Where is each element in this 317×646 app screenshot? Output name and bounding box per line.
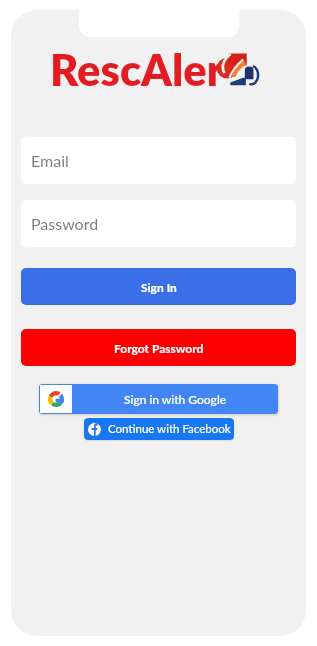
staticText: Password — [31, 214, 99, 233]
button[interactable]: Sign in with Google — [39, 384, 278, 414]
other: RescAlert logo — [218, 52, 259, 86]
staticText: RescAler — [50, 43, 224, 88]
staticText: Forgot Password — [114, 341, 204, 355]
button[interactable]: Password — [21, 200, 296, 247]
button[interactable]: Sign In — [21, 268, 296, 305]
staticText: Email — [31, 151, 69, 170]
staticText: Sign in with Google — [124, 392, 227, 406]
staticText: Sign In — [141, 280, 177, 294]
button[interactable]: Continue with Facebook — [84, 418, 234, 440]
button[interactable]: Email — [21, 137, 296, 184]
button[interactable]: Forgot Password — [21, 329, 296, 366]
staticText: Continue with Facebook — [108, 422, 231, 436]
